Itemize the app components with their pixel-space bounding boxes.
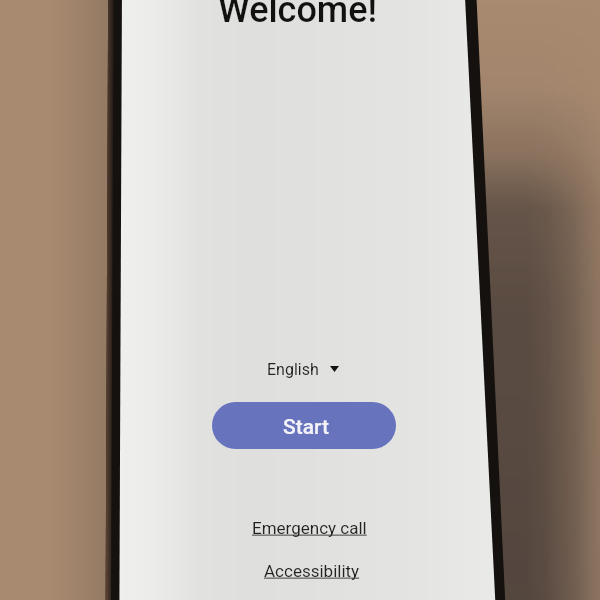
staticText: English	[267, 360, 319, 379]
other: Choose language	[330, 366, 339, 372]
staticText: Emergency call	[252, 518, 367, 538]
button[interactable]: Emergency call	[246, 513, 373, 543]
staticText: Start	[283, 415, 329, 440]
button[interactable]: Start	[212, 402, 396, 449]
staticText: Accessibility	[264, 561, 360, 581]
staticText: Welcome!	[218, 0, 377, 31]
button[interactable]: Accessibility	[258, 556, 366, 586]
button[interactable]: English	[263, 355, 343, 384]
